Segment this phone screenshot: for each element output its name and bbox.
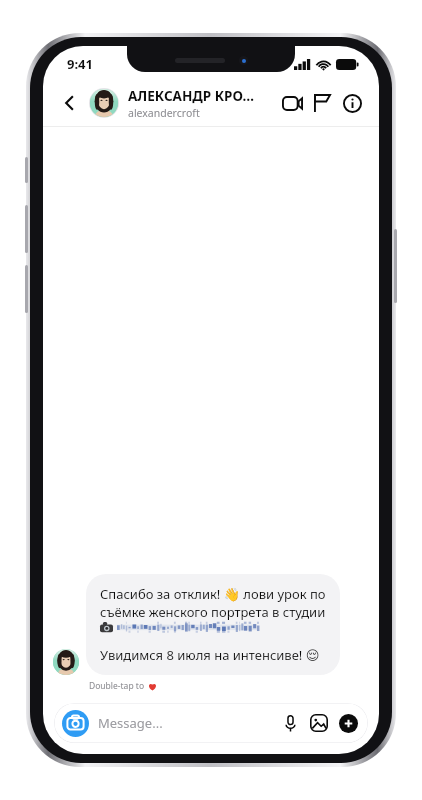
button[interactable]: Gallery — [307, 711, 331, 735]
staticText: съёмке женского портрета в студии — [100, 603, 326, 621]
button[interactable]: More options — [336, 711, 360, 735]
staticText: Message... — [98, 714, 278, 732]
button[interactable]: АЛЕКСАНДР КРО… — [128, 87, 273, 120]
staticText: Увидимся 8 июля на интенсиве! 😌 — [100, 646, 320, 664]
button[interactable]: Video call — [277, 88, 307, 118]
staticText: Double-tap to — [89, 680, 145, 692]
staticText: alexandercroft — [128, 106, 200, 120]
button[interactable]: Flag — [307, 88, 337, 118]
button[interactable]: Спасибо за отклик! 👋 лови урок по — [86, 574, 340, 675]
button[interactable]: Info — [337, 88, 367, 118]
staticText: 9:41 — [67, 55, 93, 73]
staticText: Спасибо за отклик! 👋 лови урок по — [100, 585, 326, 603]
button[interactable]: Voice message — [278, 711, 302, 735]
button[interactable]: Camera — [62, 710, 89, 737]
button[interactable]: Back — [55, 88, 85, 118]
staticText: АЛЕКСАНДР КРО… — [128, 87, 254, 105]
